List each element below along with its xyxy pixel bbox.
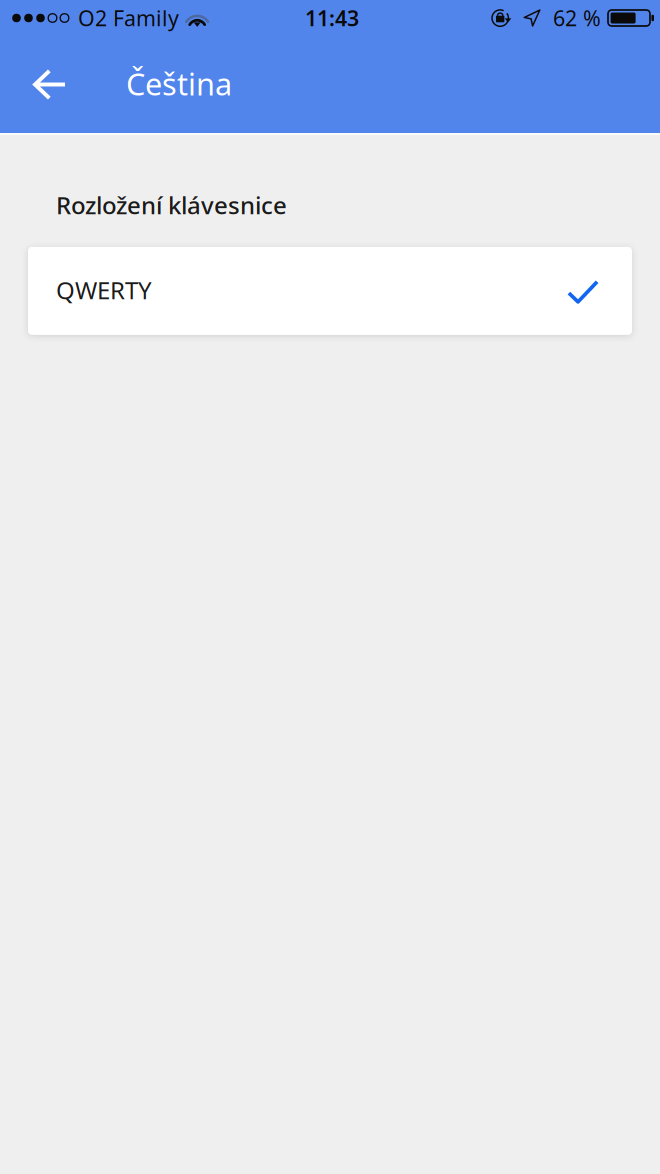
staticText: Čeština (126, 63, 232, 104)
button[interactable]: Back (17, 51, 83, 117)
button[interactable]: QWERTY (28, 247, 632, 335)
staticText: O2 Family (78, 4, 179, 32)
staticText: QWERTY (56, 274, 152, 306)
staticText: 11:43 (305, 4, 359, 32)
staticText: Rozložení klávesnice (56, 189, 287, 221)
staticText: 62 % (553, 4, 601, 32)
